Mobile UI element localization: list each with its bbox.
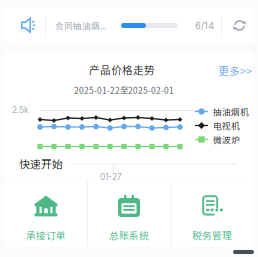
button[interactable]: 承接订单	[5, 181, 87, 247]
staticText: 2025-01-22至2025-02-01	[74, 84, 174, 96]
staticText: 合同抽油烟...	[55, 19, 106, 32]
button[interactable]: 总账系统	[88, 181, 170, 247]
staticText: 电视机	[213, 119, 240, 132]
staticText: 6/14	[195, 20, 214, 31]
staticText: 微波炉	[213, 133, 240, 146]
staticText: 抽油烟机	[213, 105, 249, 118]
staticText: 快速开始	[19, 156, 63, 171]
staticText: 01-27	[100, 172, 122, 182]
staticText: 2.5k	[12, 105, 29, 115]
staticText: 承接订单	[26, 228, 66, 242]
button[interactable]: 税务管理	[171, 181, 253, 247]
button[interactable]: 更多>>	[214, 61, 258, 81]
staticText: 税务管理	[192, 228, 232, 242]
staticText: 总账系统	[109, 228, 149, 242]
button[interactable]: Refresh	[226, 8, 253, 43]
staticText: 更多>>	[218, 63, 252, 78]
staticText: 产品价格走势	[89, 62, 155, 77]
